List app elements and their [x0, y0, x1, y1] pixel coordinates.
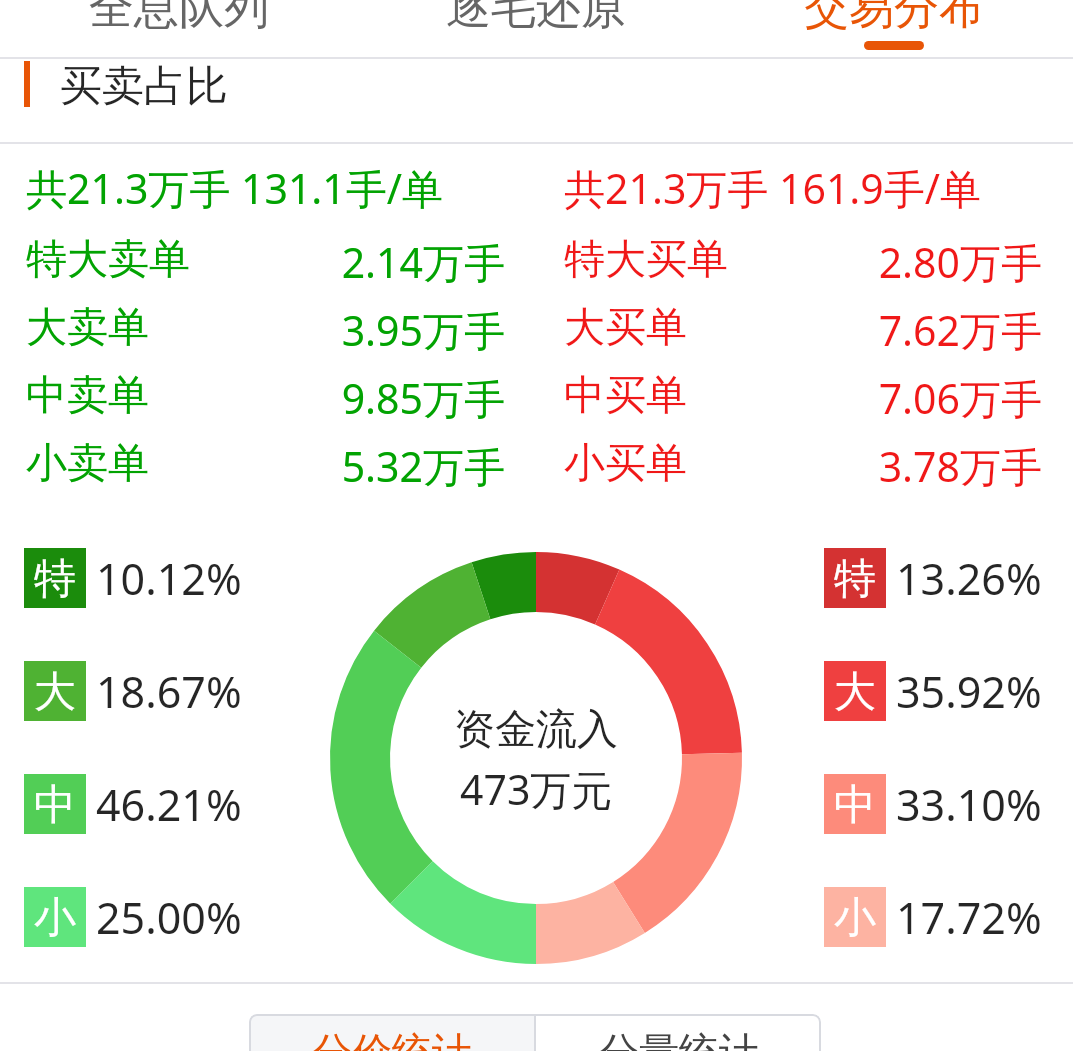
staticText: 131.1手/单 — [241, 160, 444, 216]
staticText: 特大买单 — [564, 234, 878, 286]
staticText: 交易分布 — [804, 0, 984, 37]
staticText: 10.12% — [96, 549, 242, 608]
staticText: 资金流入 — [454, 704, 618, 756]
staticText: 小卖单 — [26, 438, 341, 490]
staticText: 18.67% — [96, 662, 242, 721]
staticText: 共21.3万手 — [26, 160, 231, 216]
staticText: 473万元 — [460, 761, 613, 817]
button[interactable]: 特 — [24, 548, 242, 608]
staticText: 35.92% — [896, 662, 1042, 721]
staticText: 5.32万手 — [341, 438, 505, 494]
staticText: 大买单 — [564, 302, 878, 354]
staticText: 共21.3万手 — [564, 160, 769, 216]
button[interactable]: 小 — [824, 887, 1042, 947]
button[interactable]: 全息队列 — [0, 0, 357, 57]
staticText: 2.14万手 — [341, 234, 505, 290]
button[interactable]: 分价统计 — [249, 1014, 534, 1051]
staticText: 小 — [834, 892, 876, 945]
staticText: 大 — [34, 666, 76, 719]
staticText: 46.21% — [96, 775, 242, 834]
staticText: 中买单 — [564, 370, 878, 422]
staticText: 买卖占比 — [60, 60, 228, 106]
staticText: 13.26% — [896, 549, 1042, 608]
staticText: 33.10% — [896, 775, 1042, 834]
staticText: 2.80万手 — [878, 234, 1042, 290]
staticText: 7.06万手 — [878, 370, 1042, 426]
button[interactable]: 中 — [824, 774, 1042, 834]
staticText: 分价统计 — [312, 1027, 472, 1051]
button[interactable]: 大 — [24, 661, 242, 721]
button[interactable]: 中 — [24, 774, 242, 834]
button[interactable]: 分量统计 — [536, 1014, 821, 1051]
staticText: 大卖单 — [26, 302, 341, 354]
staticText: 3.95万手 — [341, 302, 505, 358]
staticText: 161.9手/单 — [779, 160, 982, 216]
staticText: 逐毛还原 — [446, 0, 626, 37]
staticText: 全息队列 — [89, 0, 269, 37]
staticText: 7.62万手 — [878, 302, 1042, 358]
staticText: 特 — [34, 553, 76, 606]
staticText: 特 — [834, 553, 876, 606]
staticText: 分量统计 — [599, 1027, 759, 1051]
staticText: 小 — [34, 892, 76, 945]
staticText: 中 — [34, 779, 76, 832]
staticText: 小买单 — [564, 438, 878, 490]
staticText: 9.85万手 — [341, 370, 505, 426]
button[interactable]: 交易分布 — [715, 0, 1073, 57]
staticText: 中卖单 — [26, 370, 341, 422]
button[interactable]: 资金流入占比环形图 — [330, 552, 742, 964]
staticText: 25.00% — [96, 888, 242, 947]
staticText: 17.72% — [896, 888, 1042, 947]
staticText: 特大卖单 — [26, 234, 341, 286]
staticText: 大 — [834, 666, 876, 719]
button[interactable]: 逐毛还原 — [357, 0, 715, 57]
button[interactable]: 大 — [824, 661, 1042, 721]
staticText: 3.78万手 — [878, 438, 1042, 494]
staticText: 中 — [834, 779, 876, 832]
button[interactable]: 特 — [824, 548, 1042, 608]
button[interactable]: 小 — [24, 887, 242, 947]
